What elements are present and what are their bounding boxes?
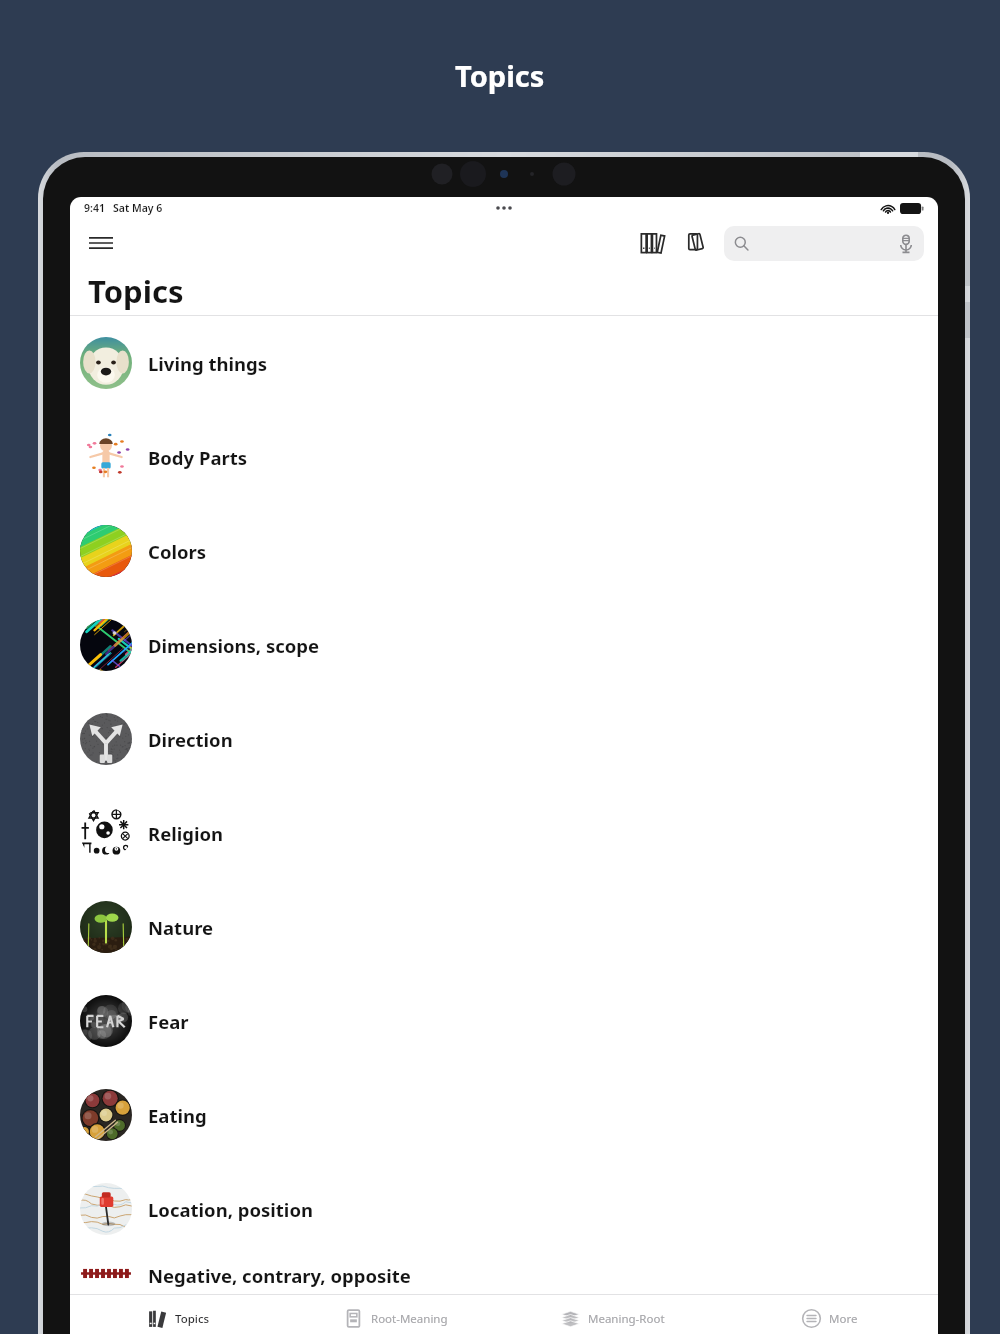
button[interactable]: Negative, contrary, opposite [70,1256,938,1294]
staticText: Eating [148,1103,207,1128]
staticText: Root-Meaning [371,1311,448,1327]
button[interactable]: Library [630,223,670,263]
button[interactable]: Location, position [70,1162,938,1256]
button[interactable]: Meaning-Root [504,1295,721,1334]
staticText: Living things [148,351,268,376]
button[interactable]: More [721,1295,938,1334]
staticText: Sat May 6 [113,201,163,215]
button[interactable]: Topics [70,1295,287,1334]
staticText: More [829,1311,858,1327]
button[interactable]: Cards [676,223,716,263]
staticText: Nature [148,915,214,940]
staticText: Colors [148,539,207,564]
staticText: Direction [148,727,233,752]
button[interactable]: Menu [82,224,120,262]
button[interactable]: Eating [70,1068,938,1162]
staticText: Topics [88,270,184,312]
button[interactable]: Root-Meaning [287,1295,504,1334]
button[interactable]: Religion [70,786,938,880]
staticText: Location, position [148,1197,313,1222]
button[interactable]: Direction [70,692,938,786]
button[interactable]: Body Parts [70,410,938,504]
staticText: Negative, contrary, opposite [148,1263,411,1288]
button[interactable]: Fear [70,974,938,1068]
button[interactable]: Dimensions, scope [70,598,938,692]
button[interactable]: Nature [70,880,938,974]
button[interactable]: Colors [70,504,938,598]
button[interactable]: Search [724,226,924,261]
staticText: Topics [175,1311,210,1327]
staticText: Topics [455,56,545,95]
button[interactable]: Living things [70,316,938,410]
staticText: Religion [148,821,224,846]
staticText: Fear [148,1009,189,1034]
staticText: Meaning-Root [588,1311,665,1327]
staticText: Body Parts [148,445,248,470]
staticText: Dimensions, scope [148,633,320,658]
staticText: 9:41 [84,201,105,215]
